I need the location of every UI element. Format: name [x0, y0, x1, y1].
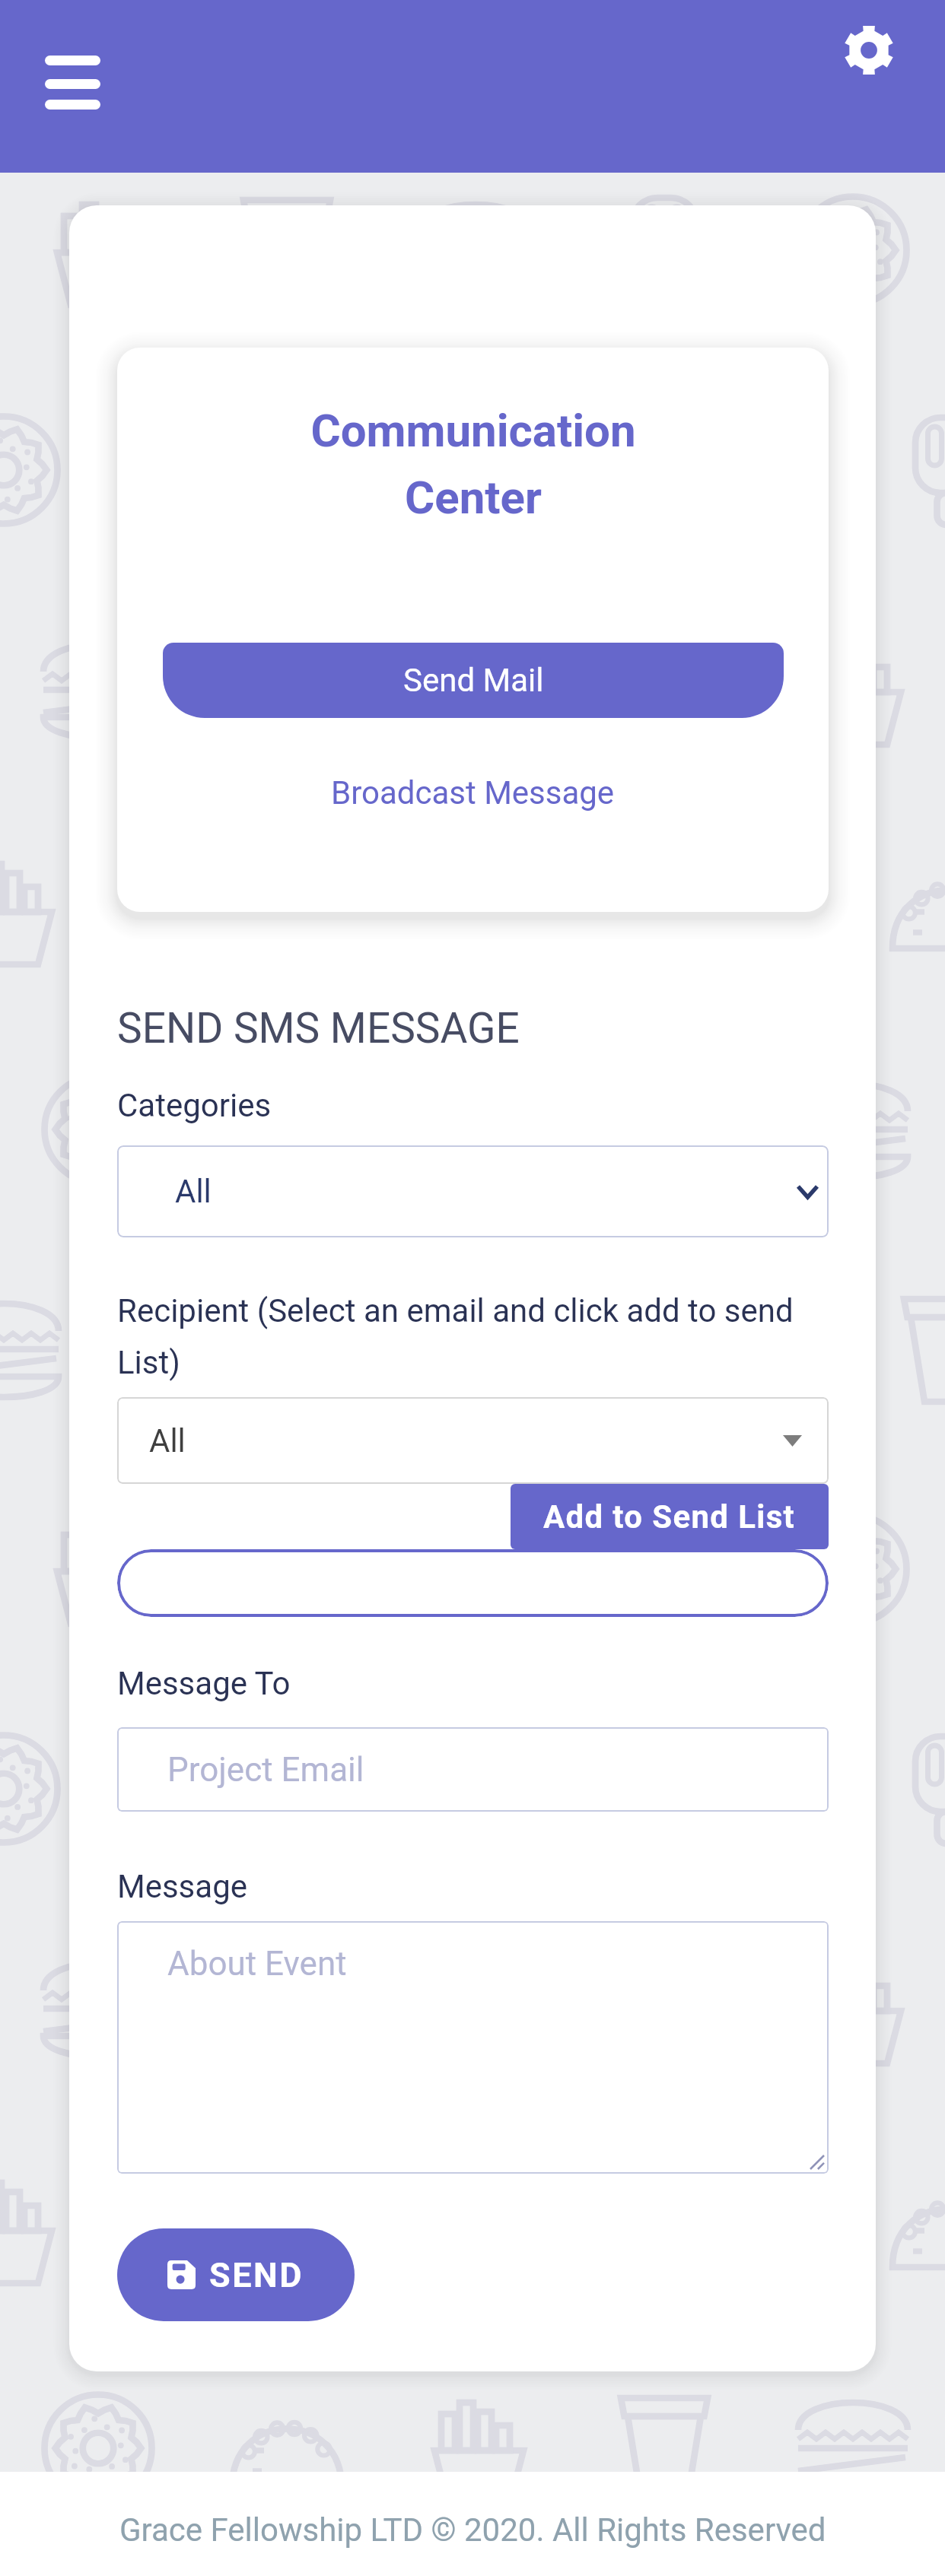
staticText: Categories	[117, 1087, 272, 1124]
staticText: Send Mail	[403, 662, 544, 699]
staticText: Communication Center	[310, 404, 636, 524]
staticText: Add to Send List	[543, 1498, 796, 1536]
staticText: SEND	[209, 2255, 304, 2295]
button[interactable]: Menu	[36, 40, 109, 116]
button[interactable]: All	[117, 1397, 829, 1484]
button[interactable]: Send Mail	[163, 643, 784, 718]
button[interactable]: Settings	[844, 25, 894, 75]
staticText: All	[175, 1173, 212, 1210]
staticText: Recipient (Select an email and click add…	[117, 1292, 829, 1381]
staticText: All	[149, 1422, 186, 1460]
button[interactable]: Add to Send List	[511, 1484, 829, 1549]
button[interactable]: Project Email	[117, 1727, 829, 1812]
staticText: Grace Fellowship LTD © 2020. All Rights …	[119, 2511, 826, 2549]
staticText: Broadcast Message	[331, 774, 615, 812]
staticText: Project Email	[167, 1750, 364, 1790]
staticText: Message	[117, 1868, 247, 1905]
button[interactable]: Broadcast Message	[313, 764, 633, 822]
staticText: Message To	[117, 1665, 291, 1702]
staticText: About Event	[167, 1944, 347, 1984]
staticText: SEND SMS MESSAGE	[117, 1004, 520, 1053]
button[interactable]: All	[117, 1145, 829, 1237]
button[interactable]: About Event	[117, 1921, 829, 2174]
button[interactable]: SEND	[117, 2228, 355, 2321]
